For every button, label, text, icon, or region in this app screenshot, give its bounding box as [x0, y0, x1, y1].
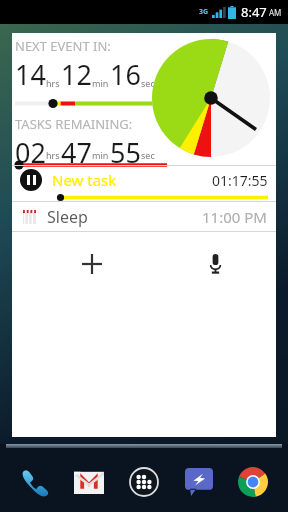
- button[interactable]: Pause task: [20, 169, 42, 191]
- staticText: sec: [141, 149, 155, 161]
- button[interactable]: Add task: [74, 246, 110, 282]
- staticText: 3G: [199, 7, 209, 17]
- button[interactable]: Messenger: [175, 458, 223, 506]
- staticText: 8:47: [241, 3, 267, 21]
- staticText: Sleep: [47, 206, 88, 228]
- staticText: 16: [110, 56, 141, 93]
- staticText: AM: [269, 7, 282, 18]
- button[interactable]: Gmail: [65, 458, 113, 506]
- staticText: 14: [15, 56, 46, 93]
- staticText: 11:00 PM: [202, 207, 267, 227]
- staticText: 02: [15, 134, 46, 165]
- staticText: 55: [110, 134, 141, 165]
- staticText: TASKS REMAINING:: [15, 115, 133, 133]
- staticText: min: [92, 149, 109, 161]
- button[interactable]: Sleep: [12, 202, 276, 231]
- button[interactable]: Voice input: [197, 246, 233, 282]
- staticText: 12: [61, 56, 92, 93]
- staticText: min: [92, 77, 109, 89]
- staticText: hrs: [46, 149, 60, 161]
- staticText: 01:17:55: [212, 171, 268, 190]
- button[interactable]: Chrome: [229, 458, 277, 506]
- button[interactable]: Phone: [11, 458, 59, 506]
- staticText: NEXT EVENT IN:: [15, 37, 111, 55]
- button[interactable]: Pause task: [12, 166, 276, 201]
- button[interactable]: Apps: [120, 458, 168, 506]
- staticText: New task: [52, 170, 117, 190]
- staticText: 47: [61, 134, 92, 165]
- staticText: sec: [141, 77, 155, 89]
- staticText: hrs: [46, 77, 60, 89]
